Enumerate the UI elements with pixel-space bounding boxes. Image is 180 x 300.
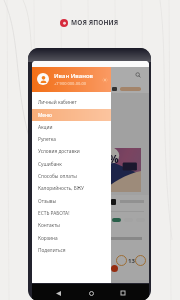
button[interactable]: Меню [32, 109, 111, 121]
staticText: 13 [128, 257, 135, 265]
staticText: Калорийность, БЖУ [38, 185, 84, 192]
staticText: Условия доставки [38, 148, 80, 155]
staticText: Акции [38, 124, 53, 131]
button[interactable]: Способы оплаты [32, 170, 111, 182]
staticText: Отзывы [38, 198, 57, 205]
button[interactable]: Калорийность, БЖУ [32, 182, 111, 194]
button[interactable]: ЕСТЬ РАБОТА! [32, 207, 111, 219]
staticText: Способы оплаты [38, 173, 77, 180]
staticText: Поделиться [38, 247, 66, 254]
staticText: ЕСТЬ РАБОТА! [38, 210, 70, 217]
button[interactable]: Личный кабинет [32, 96, 111, 108]
button[interactable]: Поделиться [32, 244, 111, 256]
staticText: Корзина [38, 235, 58, 242]
button[interactable]: Рулетка [32, 133, 111, 145]
staticText: МОЯ ЯПОНИЯ [71, 18, 119, 27]
button[interactable]: Back [51, 286, 65, 300]
staticText: Иван Иванов [54, 72, 94, 80]
staticText: Рулетка [38, 136, 56, 143]
button[interactable]: Акции [32, 121, 111, 133]
staticText: Личный кабинет [38, 99, 77, 106]
button[interactable]: Home [84, 286, 98, 300]
button[interactable]: Корзина [32, 232, 111, 244]
button[interactable]: Условия доставки [32, 145, 111, 157]
button[interactable]: Контакты [32, 219, 111, 231]
button[interactable]: Отзывы [32, 195, 111, 207]
staticText: +7 900 000-00-00 [54, 81, 87, 86]
staticText: Контакты [38, 222, 61, 229]
staticText: % [109, 152, 119, 166]
staticText: Меню [38, 112, 52, 119]
button[interactable]: Settings [102, 77, 108, 83]
button[interactable]: Recent apps [116, 286, 130, 300]
button[interactable]: Сушибанк [32, 158, 111, 170]
staticText: Сушибанк [38, 161, 62, 168]
